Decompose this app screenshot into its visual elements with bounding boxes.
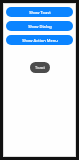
staticText: Toast <box>35 65 45 70</box>
staticText: Show Action Menu <box>22 38 58 43</box>
button[interactable]: Show Toast <box>6 7 73 17</box>
button[interactable]: Toast <box>30 62 50 73</box>
staticText: Show Toast <box>29 10 51 15</box>
button[interactable]: Show Action Menu <box>6 35 73 45</box>
button[interactable]: Show Dialog <box>6 21 73 31</box>
staticText: Show Dialog <box>28 24 52 29</box>
